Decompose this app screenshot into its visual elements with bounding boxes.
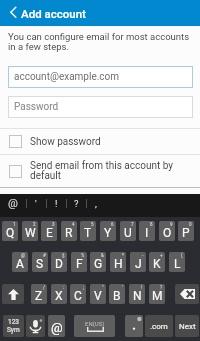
staticText: ' [122, 285, 123, 290]
staticText: F [76, 257, 83, 271]
staticText: * [122, 253, 124, 258]
staticText: S [36, 257, 44, 271]
staticText: R [65, 226, 73, 240]
staticText: 1 [13, 222, 16, 227]
button[interactable]: 6 [100, 221, 116, 241]
button[interactable]: Space [74, 315, 115, 337]
button[interactable]: 9 [159, 221, 175, 241]
button[interactable]: 0 [178, 221, 194, 241]
staticText: H [114, 257, 123, 271]
button[interactable]: - [130, 252, 146, 272]
staticText: account@example.com [14, 71, 120, 83]
button[interactable]: Shift [2, 284, 24, 304]
staticText: X [55, 289, 63, 303]
button[interactable]: ? [149, 284, 165, 304]
staticText: Sym [7, 326, 20, 334]
staticText: B [113, 289, 121, 303]
button[interactable]: 1 [2, 221, 18, 241]
staticText: 5 [91, 222, 94, 227]
staticText: Add account [21, 7, 86, 20]
button[interactable]: ' [109, 284, 125, 304]
button[interactable]: 2 [22, 221, 38, 241]
button[interactable]: 123 [3, 315, 24, 337]
staticText: N [133, 289, 142, 303]
button[interactable]: Voice input [26, 315, 45, 337]
button[interactable]: ! [46, 194, 66, 212]
button[interactable]: # [32, 252, 48, 272]
staticText: @ [51, 320, 63, 335]
button[interactable]: $ [51, 252, 67, 272]
button[interactable]: 5 [80, 221, 96, 241]
button[interactable]: @ [12, 252, 28, 272]
button[interactable]: @ [48, 315, 65, 337]
staticText: @ [21, 253, 26, 258]
button[interactable]: % [71, 252, 87, 272]
staticText: G [94, 257, 103, 271]
staticText: ! [55, 198, 58, 209]
staticText: 9 [170, 222, 173, 227]
button[interactable]: Send email from this account by default [0, 155, 200, 187]
button[interactable]: Delete [175, 284, 199, 304]
staticText: & [101, 253, 104, 258]
button[interactable]: / [31, 284, 47, 304]
button[interactable]: account@example.com [8, 66, 193, 88]
staticText: ' [35, 198, 37, 209]
staticText: V [94, 289, 102, 303]
button[interactable]: Period [125, 315, 143, 337]
button[interactable]: Navigate up [0, 0, 200, 26]
staticText: @ [8, 197, 18, 210]
staticText: " [102, 285, 104, 290]
staticText: U [124, 226, 132, 240]
staticText: 4 [72, 222, 75, 227]
staticText: M [152, 289, 163, 303]
staticText: E [46, 226, 53, 240]
staticText: P [182, 226, 190, 240]
staticText: D [55, 257, 63, 271]
button[interactable]: Next [175, 315, 199, 337]
button[interactable]: : [51, 284, 67, 304]
staticText: O [163, 226, 172, 240]
button[interactable]: * [110, 252, 126, 272]
button[interactable]: " [90, 284, 106, 304]
staticText: EN(US) [85, 320, 105, 327]
button[interactable]: Password [8, 96, 193, 118]
staticText: - [142, 253, 144, 258]
staticText: Y [104, 226, 112, 240]
button[interactable]: @ [0, 194, 26, 212]
staticText: ? [160, 285, 163, 290]
staticText: J [135, 257, 142, 271]
staticText: A [16, 257, 24, 271]
button[interactable]: .com [145, 315, 173, 337]
staticText: T [84, 226, 92, 240]
staticText: / [43, 285, 45, 290]
staticText: 8 [150, 222, 153, 227]
button[interactable]: ' [26, 194, 46, 212]
staticText: 123 [8, 318, 19, 326]
button[interactable]: + [149, 252, 165, 272]
button[interactable]: ? [66, 194, 86, 212]
button[interactable]: 4 [61, 221, 77, 241]
other: Voice input [29, 319, 42, 334]
button[interactable]: , [86, 194, 106, 212]
staticText: ! [141, 285, 143, 290]
other: Navigate up [6, 6, 18, 18]
button[interactable]: 8 [139, 221, 155, 241]
staticText: 6 [111, 222, 114, 227]
staticText: ? [74, 198, 79, 209]
staticText: L [174, 257, 181, 271]
staticText: # [43, 253, 46, 258]
button[interactable]: 3 [41, 221, 57, 241]
staticText: , [95, 198, 97, 209]
button[interactable]: ! [129, 284, 145, 304]
staticText: 0 [189, 222, 192, 227]
button[interactable]: 7 [120, 221, 136, 241]
staticText: ; [83, 285, 84, 290]
staticText: Z [35, 289, 43, 303]
button[interactable]: ( [169, 252, 185, 272]
staticText: ( [181, 253, 183, 258]
staticText: You can configure email for most account… [8, 31, 190, 52]
button[interactable]: Show password [0, 129, 200, 154]
button[interactable]: & [90, 252, 106, 272]
button[interactable]: ; [70, 284, 86, 304]
staticText: K [153, 257, 161, 271]
